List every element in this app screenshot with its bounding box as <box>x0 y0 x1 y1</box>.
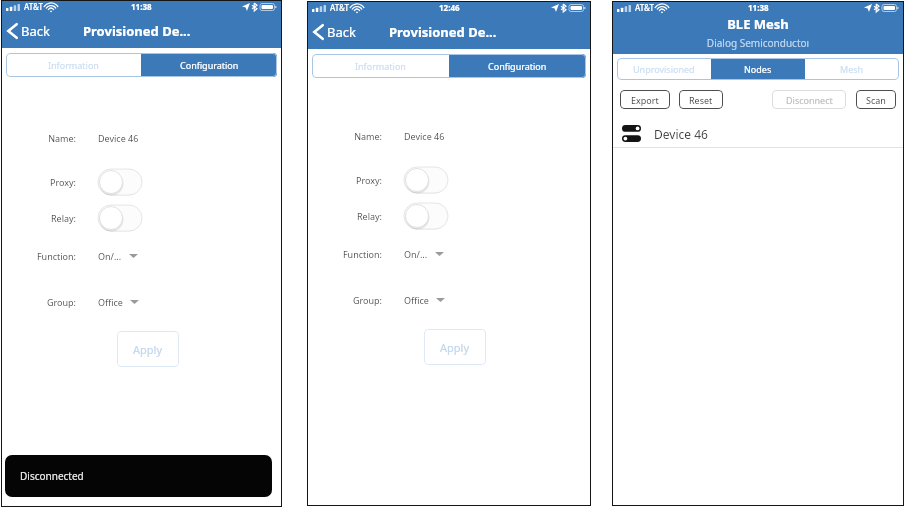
staticText: Mesh <box>840 63 864 75</box>
button[interactable]: On/... <box>98 250 138 262</box>
staticText: Export <box>631 94 659 106</box>
staticText: Function: <box>1 250 76 262</box>
staticText: 11:38 <box>131 1 152 12</box>
button[interactable]: Export <box>620 90 670 109</box>
button[interactable]: Disconnected <box>5 455 272 497</box>
button[interactable]: Disconnect <box>772 90 846 109</box>
other: Device settings <box>622 125 641 142</box>
staticText: Group: <box>1 296 76 308</box>
staticText: Group: <box>307 294 382 306</box>
button[interactable]: Mesh <box>805 58 899 80</box>
staticText: Nodes <box>744 63 772 75</box>
staticText: Provisioned De... <box>389 23 497 41</box>
staticText: Unprovisioned <box>633 63 695 75</box>
button[interactable]: Back <box>313 23 356 41</box>
button[interactable]: Device settings <box>612 120 904 147</box>
button[interactable]: Information <box>6 53 141 77</box>
staticText: Provisioned De... <box>83 22 191 40</box>
button[interactable]: Reset <box>679 90 723 109</box>
staticText: 12:46 <box>439 2 460 13</box>
staticText: Reset <box>689 94 713 106</box>
button[interactable]: Configuration <box>449 54 586 78</box>
button[interactable] <box>98 169 142 195</box>
staticText: AT&T <box>330 2 349 13</box>
staticText: BLE Mesh <box>612 15 904 33</box>
button[interactable]: Back <box>7 22 50 40</box>
button[interactable]: Office <box>404 294 445 306</box>
staticText: Disconnected <box>20 469 84 483</box>
staticText: Device 46 <box>98 132 139 144</box>
staticText: 11:38 <box>748 2 769 13</box>
staticText: Disconnect <box>786 94 833 106</box>
button[interactable]: Configuration <box>141 53 277 77</box>
staticText: Back <box>21 22 50 40</box>
staticText: Information <box>48 59 99 71</box>
button[interactable]: Information <box>312 54 449 78</box>
staticText: Office <box>98 296 123 308</box>
button[interactable]: On/... <box>404 248 444 260</box>
staticText: Information <box>355 60 406 72</box>
staticText: Office <box>404 294 429 306</box>
staticText: Device 46 <box>654 126 708 142</box>
staticText: Relay: <box>307 210 382 222</box>
button[interactable] <box>404 203 448 229</box>
button[interactable]: Office <box>98 296 139 308</box>
staticText: Configuration <box>180 59 239 71</box>
staticText: Scan <box>866 94 886 106</box>
button[interactable] <box>98 205 142 231</box>
staticText: On/... <box>98 250 122 262</box>
staticText: On/... <box>404 248 428 260</box>
staticText: Function: <box>307 248 382 260</box>
staticText: Apply <box>133 342 163 357</box>
button[interactable]: Apply <box>424 329 486 365</box>
button[interactable]: Scan <box>856 90 896 109</box>
button[interactable] <box>404 167 448 193</box>
staticText: Relay: <box>1 212 76 224</box>
staticText: AT&T <box>635 2 654 13</box>
staticText: Back <box>327 23 356 41</box>
staticText: Proxy: <box>1 176 76 188</box>
staticText: Name: <box>1 132 76 144</box>
button[interactable]: Apply <box>117 331 179 367</box>
button[interactable]: Nodes <box>711 58 805 80</box>
staticText: Apply <box>440 340 470 355</box>
staticText: Dialog Semiconductoı <box>612 36 904 50</box>
staticText: AT&T <box>24 1 43 12</box>
staticText: Name: <box>307 130 382 142</box>
staticText: Proxy: <box>307 174 382 186</box>
button[interactable]: Unprovisioned <box>617 58 711 80</box>
staticText: Device 46 <box>404 130 445 142</box>
staticText: Configuration <box>488 60 547 72</box>
